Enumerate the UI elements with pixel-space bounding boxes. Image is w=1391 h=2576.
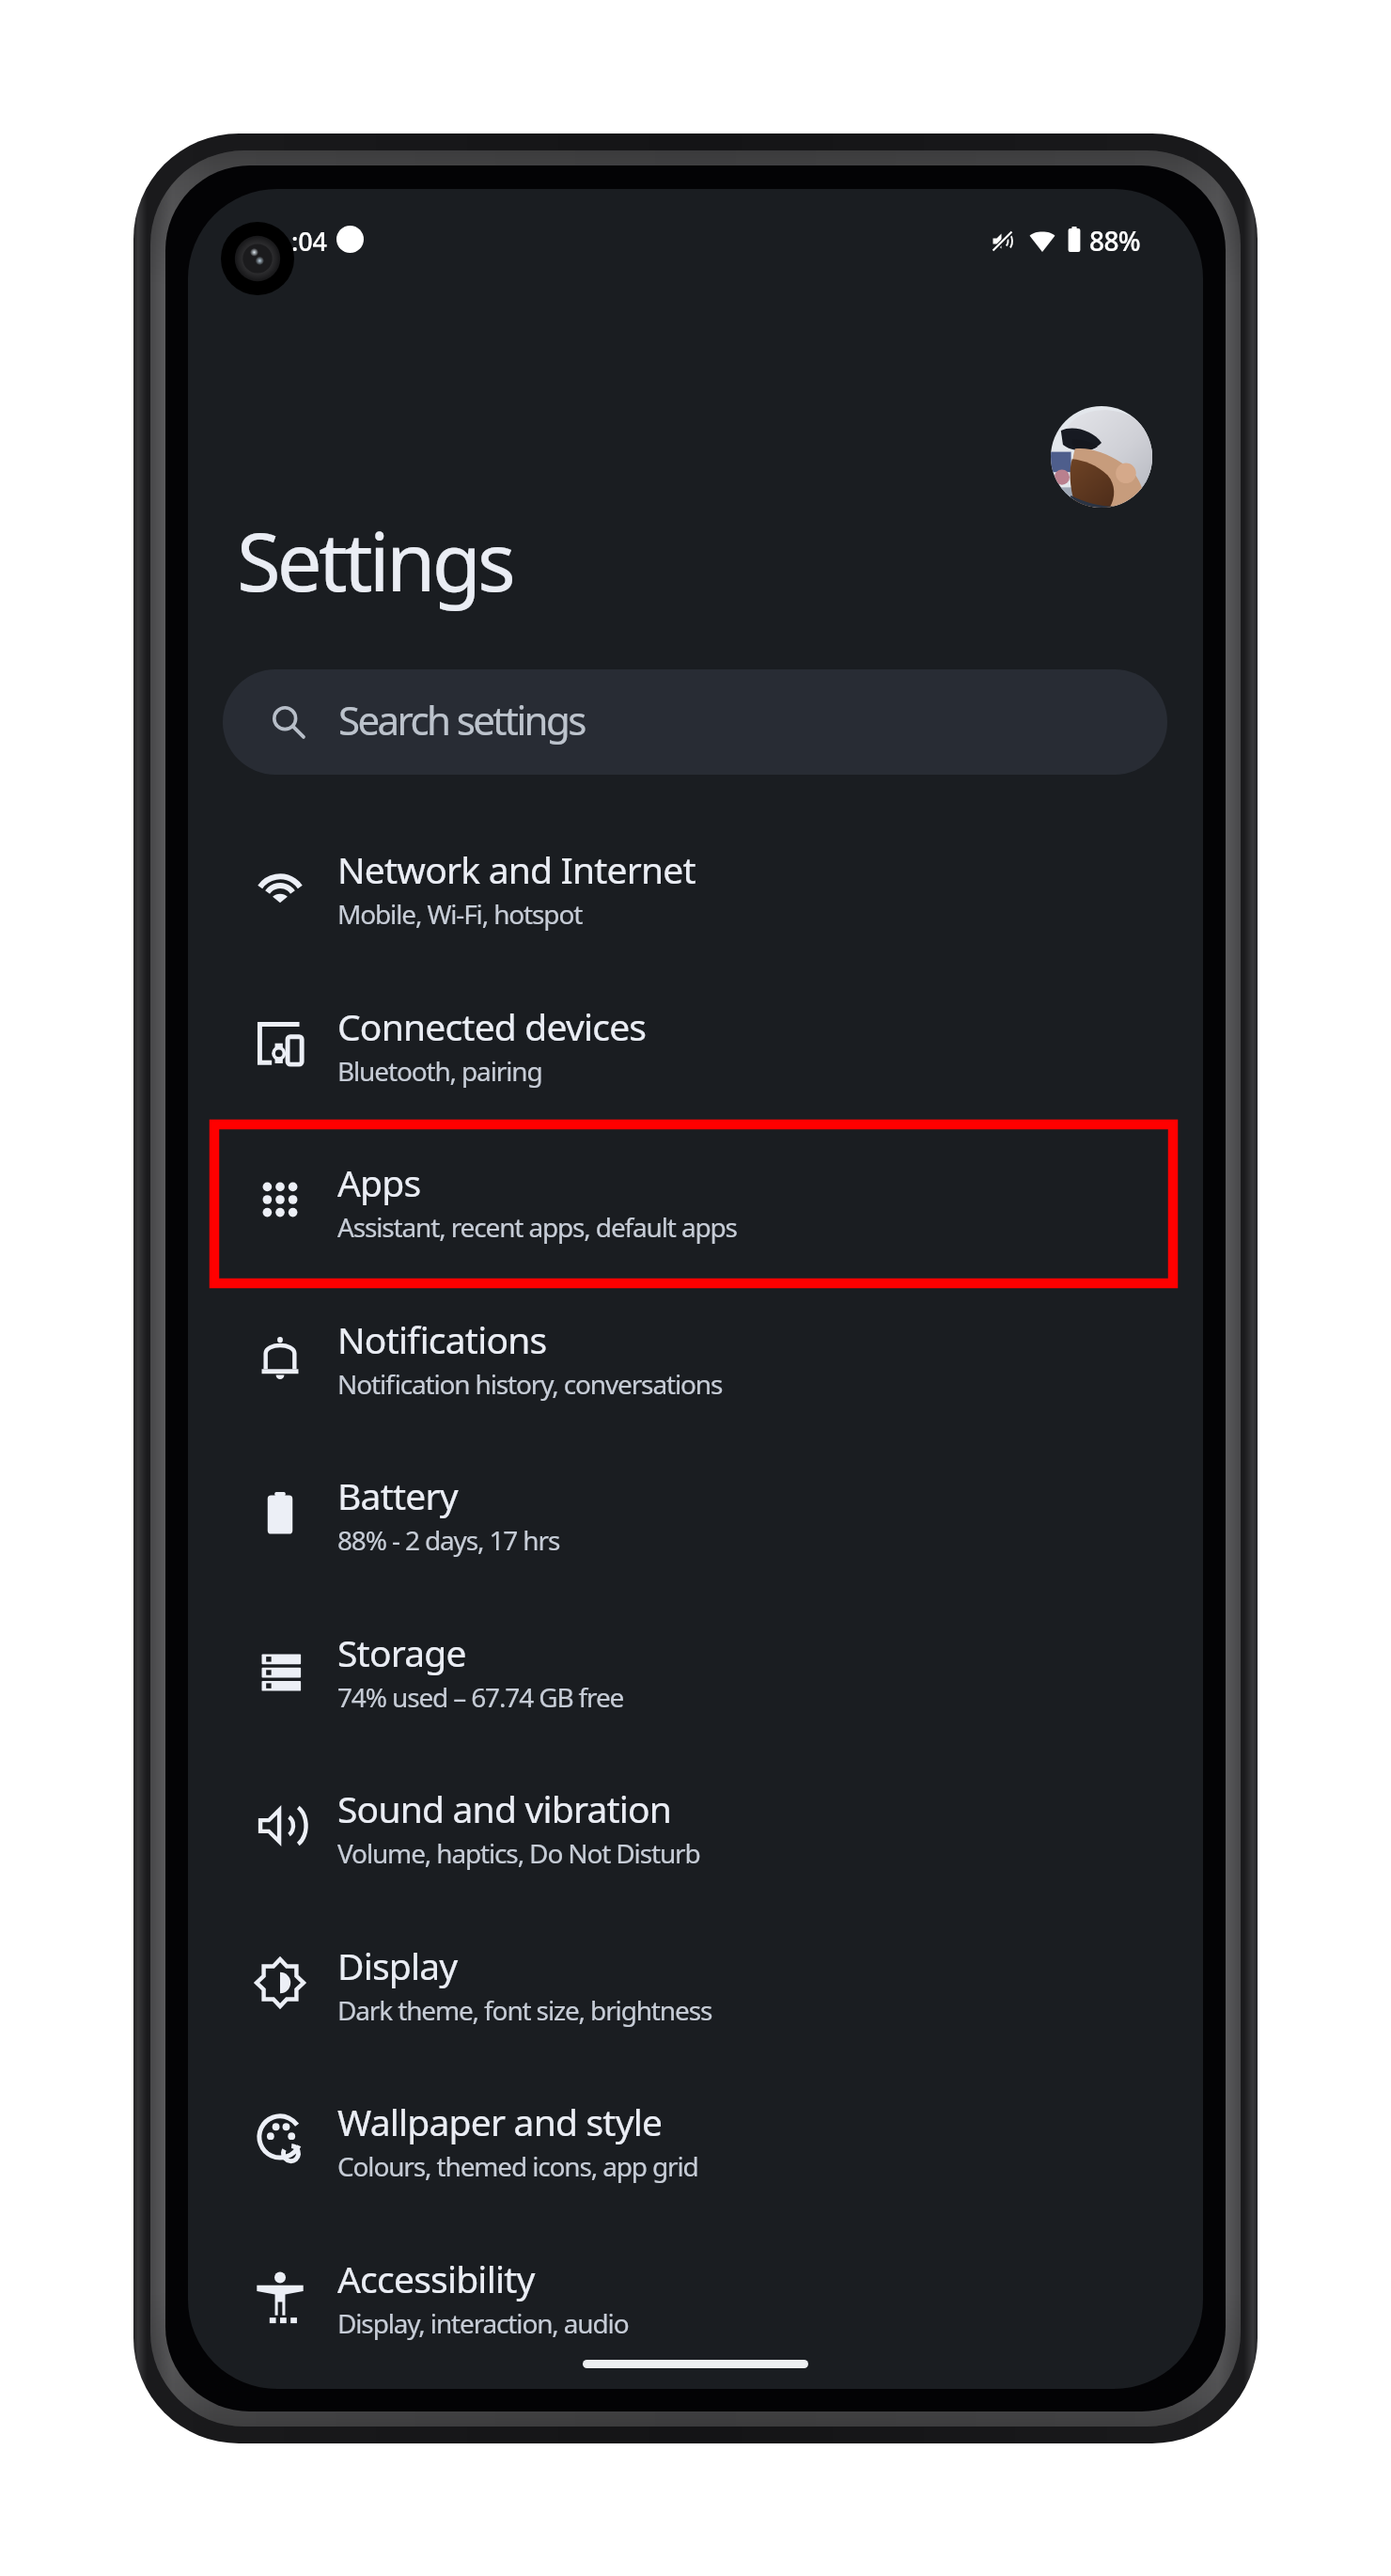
button[interactable]: Wallpaper and style (188, 2061, 1203, 2218)
button[interactable]: Apps (188, 1122, 1203, 1279)
staticText: Display (337, 1940, 458, 1990)
staticText: Dark theme, font size, brightness (337, 1992, 712, 2028)
staticText: Notification history, conversations (337, 1366, 723, 1402)
staticText: Wallpaper and style (337, 2097, 663, 2146)
staticText: Apps (337, 1157, 421, 1207)
button[interactable]: Accessibility (188, 2218, 1203, 2375)
staticText: :04 (291, 224, 327, 259)
button[interactable]: Connected devices (188, 966, 1203, 1123)
staticText: 88% - 2 days, 17 hrs (337, 1522, 560, 1558)
staticText: Display, interaction, audio (337, 2305, 629, 2341)
staticText: Settings (237, 506, 513, 615)
staticText: Storage (337, 1627, 466, 1677)
button[interactable]: Notifications (188, 1279, 1203, 1436)
staticText: Colours, themed icons, app grid (337, 2148, 698, 2184)
button[interactable]: Sound and vibration (188, 1748, 1203, 1905)
staticText: Connected devices (337, 1001, 647, 1051)
staticText: Assistant, recent apps, default apps (337, 1209, 737, 1245)
button[interactable]: Network and Internet (188, 809, 1203, 966)
staticText: Volume, haptics, Do Not Disturb (337, 1835, 700, 1871)
staticText: Notifications (337, 1314, 547, 1364)
staticText: Bluetooth, pairing (337, 1053, 542, 1089)
button[interactable]: Search settings (223, 669, 1167, 775)
button[interactable]: Account (1051, 406, 1152, 508)
button[interactable]: Battery (188, 1435, 1203, 1592)
staticText: Accessibility (337, 2254, 535, 2303)
staticText: Battery (337, 1470, 458, 1520)
button[interactable]: Storage (188, 1592, 1203, 1749)
staticText: Mobile, Wi-Fi, hotspot (337, 896, 583, 932)
button[interactable]: Display (188, 1905, 1203, 2062)
staticText: 88% (1089, 223, 1141, 259)
staticText: Search settings (338, 693, 585, 746)
staticText: 74% used – 67.74 GB free (337, 1679, 624, 1715)
staticText: Network and Internet (337, 844, 695, 894)
staticText: Sound and vibration (337, 1783, 672, 1833)
